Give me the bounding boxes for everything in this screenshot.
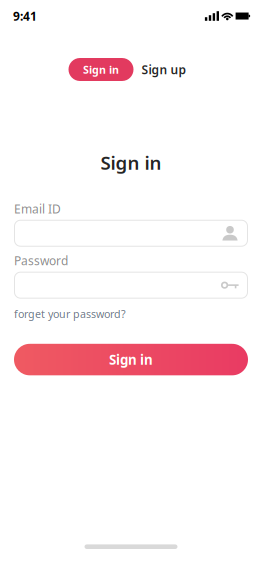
staticText: Sign in bbox=[100, 150, 161, 175]
staticText: Sign in bbox=[109, 351, 153, 368]
staticText: Email ID bbox=[14, 201, 61, 217]
button[interactable]: Sign in bbox=[14, 344, 248, 375]
staticText: forget your password? bbox=[14, 307, 126, 321]
button[interactable]: Password bbox=[14, 272, 248, 299]
staticText: 9:41 bbox=[13, 8, 37, 24]
staticText: Sign up bbox=[141, 61, 186, 77]
button[interactable]: Sign in bbox=[68, 58, 133, 81]
button[interactable]: Email ID bbox=[14, 220, 248, 247]
staticText: Password bbox=[14, 253, 68, 269]
button[interactable]: forget your password? bbox=[14, 307, 126, 321]
button[interactable]: Sign up bbox=[141, 61, 186, 77]
staticText: Sign in bbox=[83, 62, 119, 77]
